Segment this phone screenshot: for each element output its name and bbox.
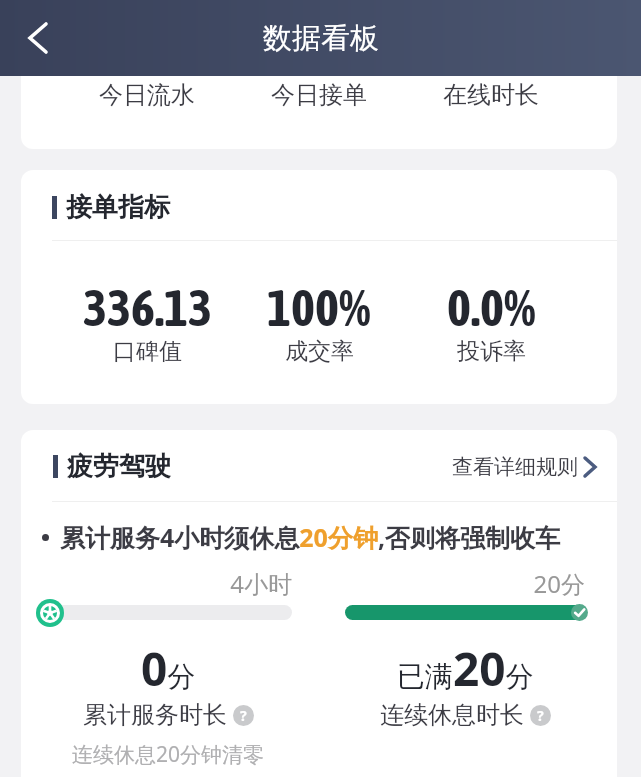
staticText: 0分 xyxy=(141,637,196,700)
staticText: 今日流水 xyxy=(99,80,195,110)
staticText: 连续休息20分钟清零 xyxy=(72,740,265,769)
staticText: 查看详细规则 xyxy=(452,454,578,480)
staticText: 口碑值 xyxy=(113,337,182,366)
button[interactable] xyxy=(16,16,60,60)
staticText: 累计服务时长 xyxy=(83,700,227,730)
staticText: 4小时 xyxy=(45,567,292,600)
staticText: ? xyxy=(240,706,247,725)
staticText: 336.13 xyxy=(83,278,212,336)
staticText: 数据看板 xyxy=(263,20,379,57)
staticText: 100% xyxy=(267,278,371,336)
staticText: 成交率 xyxy=(285,337,354,366)
staticText: 0.0% xyxy=(447,278,536,336)
staticText: ? xyxy=(537,706,544,725)
staticText: 接单指标 xyxy=(66,191,170,224)
staticText: 20分 xyxy=(345,567,585,600)
staticText: 疲劳驾驶 xyxy=(67,450,171,483)
button[interactable]: 查看详细规则 xyxy=(452,454,595,480)
staticText: 投诉率 xyxy=(457,337,526,366)
staticText: 累计服务4小时须休息20分钟,否则将强制收车 xyxy=(60,520,561,554)
staticText: 连续休息时长 xyxy=(380,700,524,730)
staticText: 已满20分 xyxy=(397,637,534,700)
staticText: 今日接单 xyxy=(271,80,367,110)
staticText: 在线时长 xyxy=(443,80,539,110)
